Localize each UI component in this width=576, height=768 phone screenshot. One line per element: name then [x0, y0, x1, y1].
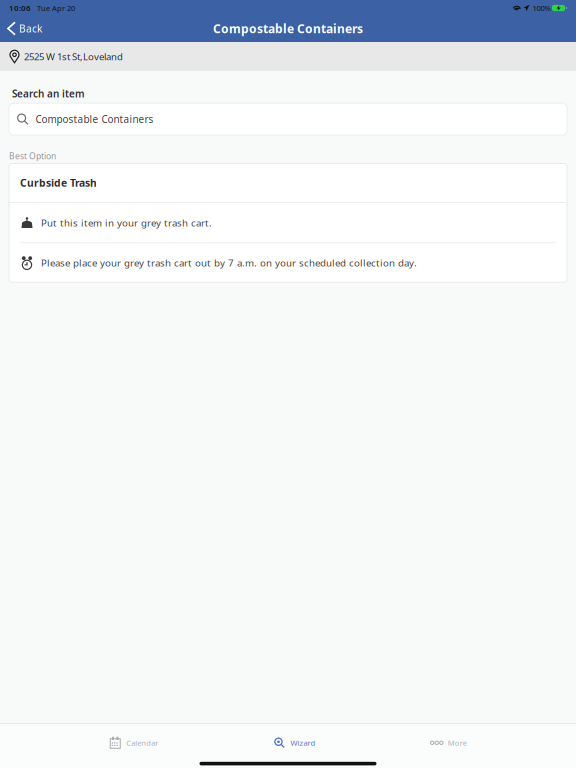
staticText: Compostable Containers [35, 113, 153, 126]
staticText: Back [19, 22, 42, 35]
staticText: More [448, 738, 467, 748]
staticText: Put this item in your grey trash cart. [41, 216, 212, 229]
button[interactable]: Back [0, 19, 50, 38]
staticText: Compostable Containers [213, 20, 363, 36]
button[interactable]: Wizard [267, 732, 321, 754]
staticText: 100% [532, 3, 550, 13]
staticText: 10:06 [9, 3, 31, 13]
staticText: Calendar [126, 738, 158, 748]
staticText: Best Option [9, 150, 56, 161]
staticText: Please place your grey trash cart out by… [41, 256, 417, 269]
button[interactable]: More [425, 732, 473, 754]
staticText: Search an item [12, 87, 85, 100]
button[interactable]: Compostable Containers [9, 103, 567, 135]
staticText: 2525 W 1st St,Loveland [24, 50, 123, 63]
staticText: Wizard [290, 738, 315, 748]
staticText: Curbside Trash [20, 176, 97, 190]
staticText: Tue Apr 20 [37, 3, 75, 13]
button[interactable]: Calendar [103, 732, 164, 754]
